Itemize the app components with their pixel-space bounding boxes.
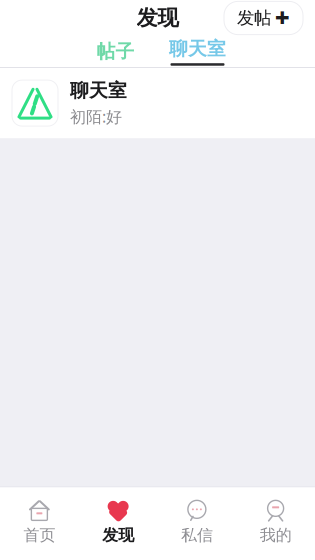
button[interactable]: 发帖 bbox=[224, 1, 303, 35]
staticText: 发现 bbox=[136, 5, 178, 31]
button[interactable]: 首页 bbox=[0, 492, 79, 551]
button[interactable]: 发现 bbox=[79, 492, 158, 551]
button[interactable]: 我的 bbox=[236, 492, 315, 551]
staticText: ✚ bbox=[275, 8, 290, 28]
staticText: 发现 bbox=[102, 525, 134, 545]
staticText: 发帖 bbox=[237, 7, 271, 29]
staticText: 聊天室 bbox=[70, 79, 127, 102]
button[interactable]: 私信 bbox=[157, 492, 236, 551]
button[interactable]: 帖子 bbox=[84, 36, 146, 66]
staticText: 帖子 bbox=[96, 40, 134, 63]
button[interactable]: 聊天室 bbox=[164, 36, 230, 66]
staticText: 聊天室 bbox=[169, 37, 226, 60]
staticText: 首页 bbox=[23, 525, 55, 545]
staticText: 初陌:好 bbox=[70, 106, 122, 127]
staticText: 私信 bbox=[181, 525, 213, 545]
button[interactable]: 聊天室 bbox=[0, 68, 315, 138]
staticText: 我的 bbox=[260, 525, 292, 545]
